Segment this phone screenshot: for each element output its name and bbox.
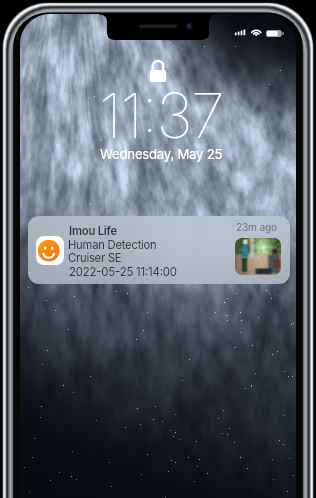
staticText: 2022-05-25 11:14:00: [69, 265, 177, 279]
staticText: Imou Life: [69, 224, 117, 238]
staticText: Cruiser SE: [68, 251, 122, 265]
button[interactable]: Imou Life: [28, 216, 290, 284]
staticText: 23m ago: [236, 221, 277, 233]
staticText: 11:37: [99, 78, 224, 153]
staticText: Wednesday, May 25: [100, 146, 223, 162]
staticText: Human Detection: [68, 238, 157, 252]
